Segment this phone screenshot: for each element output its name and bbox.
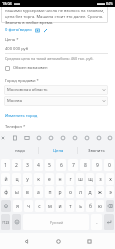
button[interactable]: п [45, 186, 54, 198]
button[interactable]: й [1, 173, 10, 185]
button[interactable]: 0 фото/видео [5, 27, 48, 33]
button[interactable]: 5 [45, 159, 54, 171]
button[interactable]: tool9 [105, 131, 115, 144]
staticText: 0 [108, 162, 111, 169]
button[interactable]: 2 [12, 159, 21, 171]
button[interactable]: 1 [1, 159, 10, 171]
button[interactable]: 7 [68, 159, 78, 171]
button[interactable]: Recents [83, 235, 95, 247]
staticText: я [16, 203, 19, 210]
staticText: Москва [7, 98, 22, 104]
button[interactable]: ы [12, 186, 21, 198]
button[interactable]: с [35, 200, 44, 212]
button[interactable]: 9 [92, 159, 102, 171]
staticText: б [89, 203, 92, 210]
button[interactable]: tool6 [69, 131, 81, 144]
button[interactable]: м [46, 200, 54, 212]
button[interactable]: tool2 [21, 131, 33, 144]
button[interactable]: ь [76, 200, 84, 212]
button[interactable]: Звонить [77, 144, 115, 157]
staticText: ю [98, 203, 102, 210]
button[interactable]: э [106, 186, 114, 198]
button[interactable]: tool1 [9, 131, 21, 144]
button[interactable]: tool5 [57, 131, 69, 144]
staticText: Звонить [88, 148, 105, 154]
button[interactable]: у [23, 173, 32, 185]
staticText: 400 000 руб [5, 46, 29, 52]
button[interactable]: 3 [23, 159, 32, 171]
button[interactable]: ж [96, 186, 104, 198]
staticText: 18:04 [2, 1, 12, 6]
button[interactable]: tool8 [93, 131, 105, 144]
staticText: Телефон * [5, 124, 26, 130]
button[interactable]: Shift [1, 200, 11, 212]
button[interactable]: Московская область [4, 85, 108, 95]
button[interactable]: ч [24, 200, 33, 212]
button[interactable]: з [96, 173, 104, 185]
button[interactable]: 6 [56, 159, 66, 171]
staticText: в [26, 189, 29, 196]
button[interactable]: Русский [23, 214, 89, 230]
button[interactable]: ф [1, 186, 10, 198]
button[interactable]: Home [52, 235, 64, 247]
button[interactable]: и [56, 200, 64, 212]
button[interactable]: Москва [4, 96, 108, 106]
staticText: д [88, 189, 92, 196]
button[interactable]: о [66, 186, 74, 198]
staticText: ф [4, 189, 8, 196]
button[interactable]: Изменить город [5, 113, 38, 119]
button[interactable]: щ [86, 173, 94, 185]
staticText: г [69, 176, 72, 183]
button[interactable]: Обмен возможен [5, 65, 48, 71]
button[interactable]: в [23, 186, 32, 198]
button[interactable]: ?123 [1, 214, 10, 230]
staticText: с [38, 203, 41, 210]
staticText: л [79, 189, 82, 196]
button[interactable]: tool7 [81, 131, 93, 144]
button[interactable]: 0 [104, 159, 114, 171]
staticText: х [109, 176, 112, 183]
button[interactable]: Backspace [106, 200, 114, 212]
staticText: 7 [72, 162, 75, 169]
button[interactable]: tool0 [0, 131, 6, 144]
button[interactable]: г [66, 173, 74, 185]
button[interactable]: 8 [80, 159, 90, 171]
button[interactable]: надо [0, 144, 39, 157]
button[interactable]: ц [12, 173, 21, 185]
button[interactable]: Back [20, 235, 32, 247]
button[interactable]: tool4 [45, 131, 57, 144]
staticText: ы [15, 189, 19, 196]
button[interactable]: ю [96, 200, 104, 212]
staticText: у [26, 176, 29, 183]
button[interactable]: я [13, 200, 22, 212]
button[interactable]: а [34, 186, 43, 198]
button[interactable]: р [56, 186, 64, 198]
staticText: Цена * [5, 37, 19, 43]
staticText: ж [98, 189, 102, 196]
button[interactable]: Enter [104, 214, 114, 230]
button[interactable]: т [66, 200, 74, 212]
staticText: 0 фото/видео [5, 27, 32, 33]
button[interactable]: л [76, 186, 84, 198]
button[interactable]: Emoji [12, 214, 21, 230]
button[interactable]: б [86, 200, 94, 212]
staticText: 84% [106, 1, 113, 6]
button[interactable]: е [45, 173, 54, 185]
staticText: з [99, 176, 102, 183]
button[interactable]: ш [76, 173, 84, 185]
staticText: 1 [4, 162, 7, 169]
staticText: н [58, 176, 62, 183]
staticText: нашими курьерами числа не взялось на газ… [5, 8, 106, 26]
staticText: е [48, 176, 51, 183]
button[interactable]: к [34, 173, 43, 185]
button[interactable]: х [106, 173, 114, 185]
button[interactable]: Цена [39, 144, 77, 157]
button[interactable]: н [56, 173, 64, 185]
staticText: Обмен возможен [13, 65, 48, 71]
button[interactable]: д [86, 186, 94, 198]
button[interactable] [1, 7, 108, 23]
button[interactable]: 4 [34, 159, 43, 171]
staticText: Средняя цена на такой автомобиль: 460 ты… [5, 56, 94, 61]
button[interactable]: tool3 [33, 131, 45, 144]
